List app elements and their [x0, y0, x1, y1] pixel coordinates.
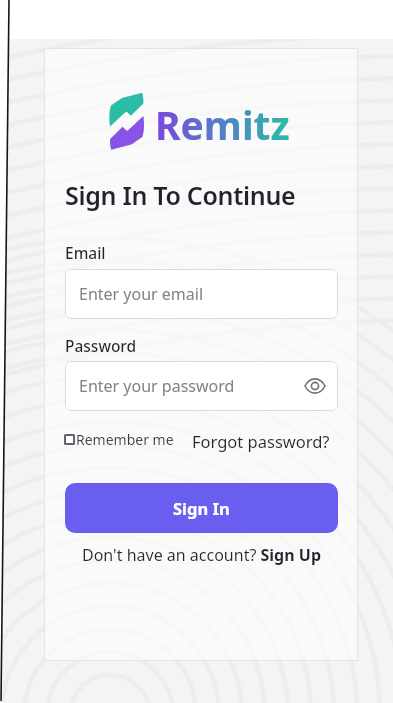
button[interactable]: Forgot password?	[192, 430, 330, 452]
button[interactable]: Sign In	[65, 483, 338, 533]
staticText: Remitz	[155, 98, 290, 151]
staticText: Enter your password	[79, 375, 235, 397]
staticText: Password	[65, 335, 137, 356]
staticText: Remember me	[76, 430, 174, 449]
button[interactable]: Remember me	[64, 430, 174, 449]
staticText: Email	[65, 242, 106, 263]
staticText: Sign In To Continue	[65, 178, 296, 212]
staticText: Enter your email	[79, 283, 204, 305]
button[interactable]: Don't have an account? Sign Up	[82, 544, 321, 566]
button[interactable]: Enter your email	[65, 269, 338, 319]
button[interactable]: Enter your password	[65, 361, 338, 411]
staticText: Sign In	[173, 497, 230, 519]
